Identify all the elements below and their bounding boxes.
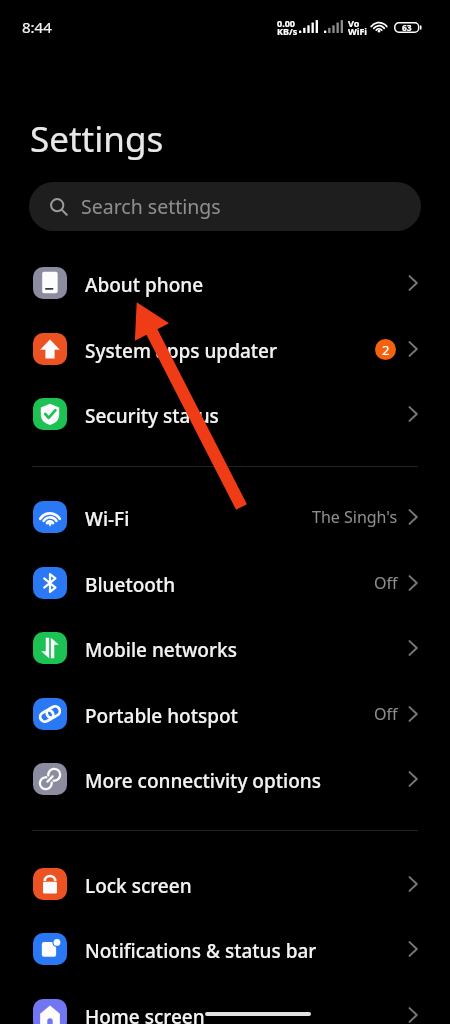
staticText: Home screen bbox=[85, 1004, 408, 1024]
staticText: Notifications & status bar bbox=[85, 938, 408, 964]
staticText: KB/s bbox=[277, 25, 298, 37]
staticText: More connectivity options bbox=[85, 768, 408, 794]
staticText: 63 bbox=[402, 22, 412, 33]
button[interactable]: About phone bbox=[0, 250, 450, 316]
staticText: Bluetooth bbox=[85, 572, 374, 598]
staticText: Security status bbox=[85, 403, 408, 429]
staticText: Mobile networks bbox=[85, 637, 408, 663]
staticText: WiFi bbox=[348, 25, 368, 37]
button[interactable]: Mobile networks bbox=[0, 615, 450, 681]
staticText: 0.00 bbox=[277, 17, 295, 29]
staticText: Off bbox=[374, 572, 398, 594]
staticText: The Singh's bbox=[312, 506, 398, 528]
button[interactable]: System apps updater bbox=[0, 316, 450, 382]
staticText: About phone bbox=[85, 272, 408, 298]
button[interactable]: Portable hotspot bbox=[0, 681, 450, 747]
staticText: Portable hotspot bbox=[85, 703, 374, 729]
button[interactable]: Security status bbox=[0, 381, 450, 447]
staticText: Vo bbox=[348, 17, 360, 29]
staticText: 2 bbox=[382, 341, 390, 359]
staticText: Search settings bbox=[81, 193, 221, 220]
staticText: Lock screen bbox=[85, 873, 408, 899]
button[interactable]: More connectivity options bbox=[0, 746, 450, 812]
button[interactable]: Lock screen bbox=[0, 851, 450, 917]
button[interactable]: Notifications & status bar bbox=[0, 916, 450, 982]
staticText: System apps updater bbox=[85, 338, 375, 364]
button[interactable]: Home screen bbox=[0, 982, 450, 1024]
button[interactable]: Wi-Fi bbox=[0, 484, 450, 550]
button[interactable]: Search settings bbox=[29, 182, 421, 231]
staticText: Settings bbox=[30, 115, 164, 163]
staticText: 8:44 bbox=[22, 17, 52, 37]
staticText: Wi-Fi bbox=[85, 506, 312, 532]
button[interactable]: Bluetooth bbox=[0, 550, 450, 616]
staticText: Off bbox=[374, 703, 398, 725]
